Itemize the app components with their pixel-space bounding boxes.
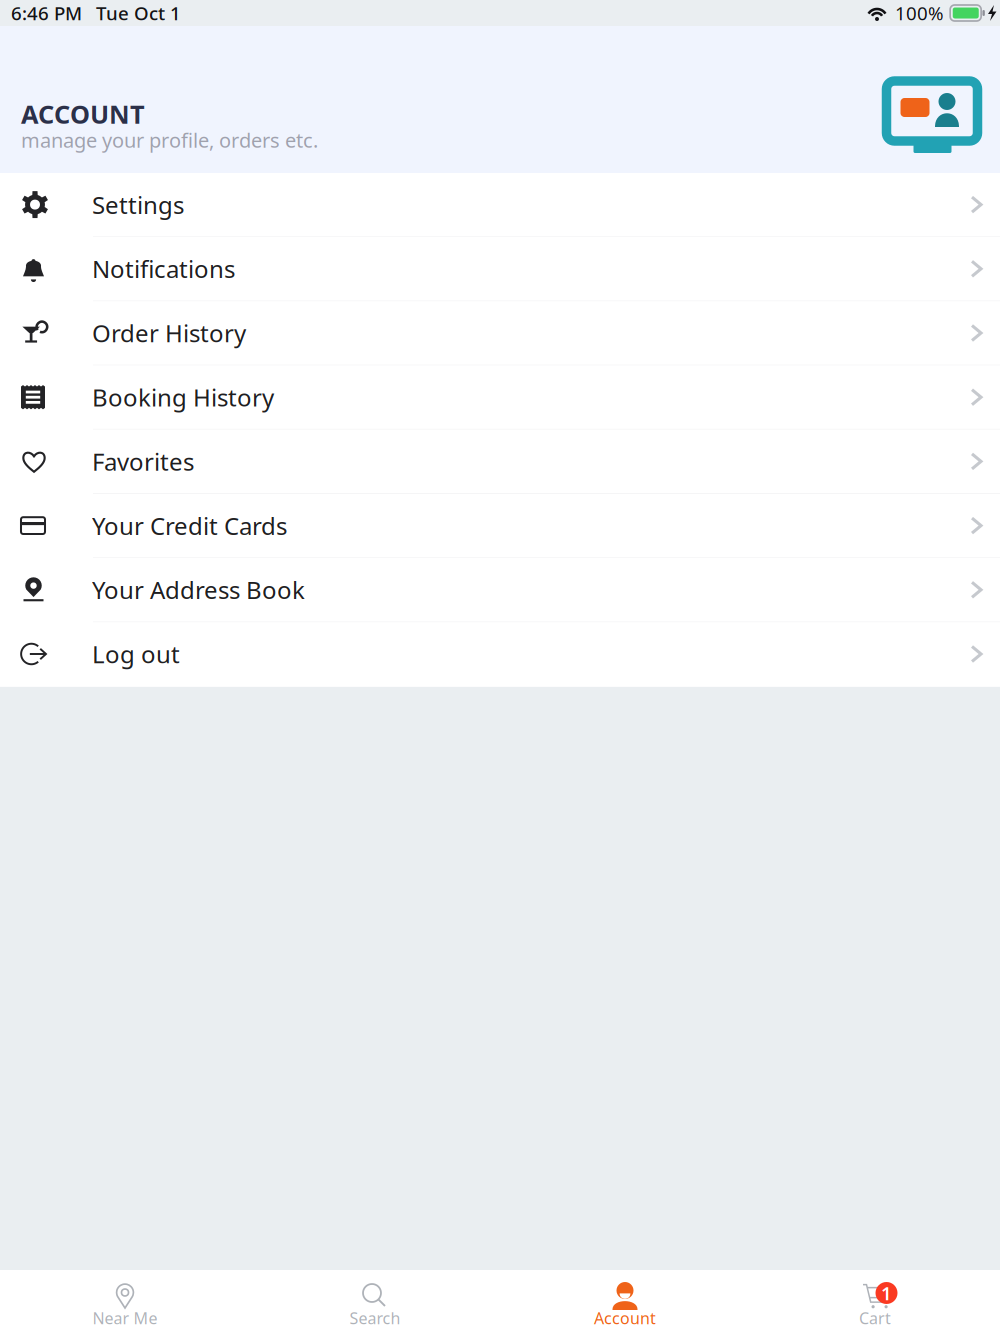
staticText: ACCOUNT: [21, 97, 145, 131]
button[interactable]: Search: [250, 1270, 500, 1334]
staticText: Your Address Book: [92, 574, 305, 606]
button[interactable]: Log out: [0, 622, 1000, 687]
staticText: Your Credit Cards: [92, 510, 287, 542]
button[interactable]: Your Credit Cards: [0, 494, 1000, 558]
staticText: Account: [594, 1307, 656, 1329]
button[interactable]: Notifications: [0, 237, 1000, 301]
staticText: 1: [881, 1281, 892, 1305]
staticText: Near Me: [92, 1307, 157, 1329]
staticText: Booking History: [92, 381, 274, 413]
staticText: Notifications: [92, 253, 235, 285]
staticText: Order History: [92, 317, 246, 349]
button[interactable]: Booking History: [0, 366, 1000, 430]
staticText: 100%: [895, 1, 944, 25]
button[interactable]: Account: [500, 1270, 750, 1334]
staticText: Favorites: [92, 445, 194, 477]
staticText: Cart: [859, 1307, 891, 1329]
staticText: 6:46 PM: [11, 1, 82, 25]
button[interactable]: Near Me: [0, 1270, 250, 1334]
staticText: Settings: [92, 189, 184, 221]
button[interactable]: Settings: [0, 173, 1000, 237]
staticText: Log out: [92, 638, 180, 670]
button[interactable]: Your Address Book: [0, 558, 1000, 622]
button[interactable]: 1: [750, 1270, 1000, 1334]
staticText: manage your profile, orders etc.: [21, 127, 318, 153]
staticText: Search: [349, 1307, 400, 1329]
button[interactable]: Order History: [0, 301, 1000, 366]
button[interactable]: Favorites: [0, 430, 1000, 494]
staticText: Tue Oct 1: [96, 1, 181, 25]
